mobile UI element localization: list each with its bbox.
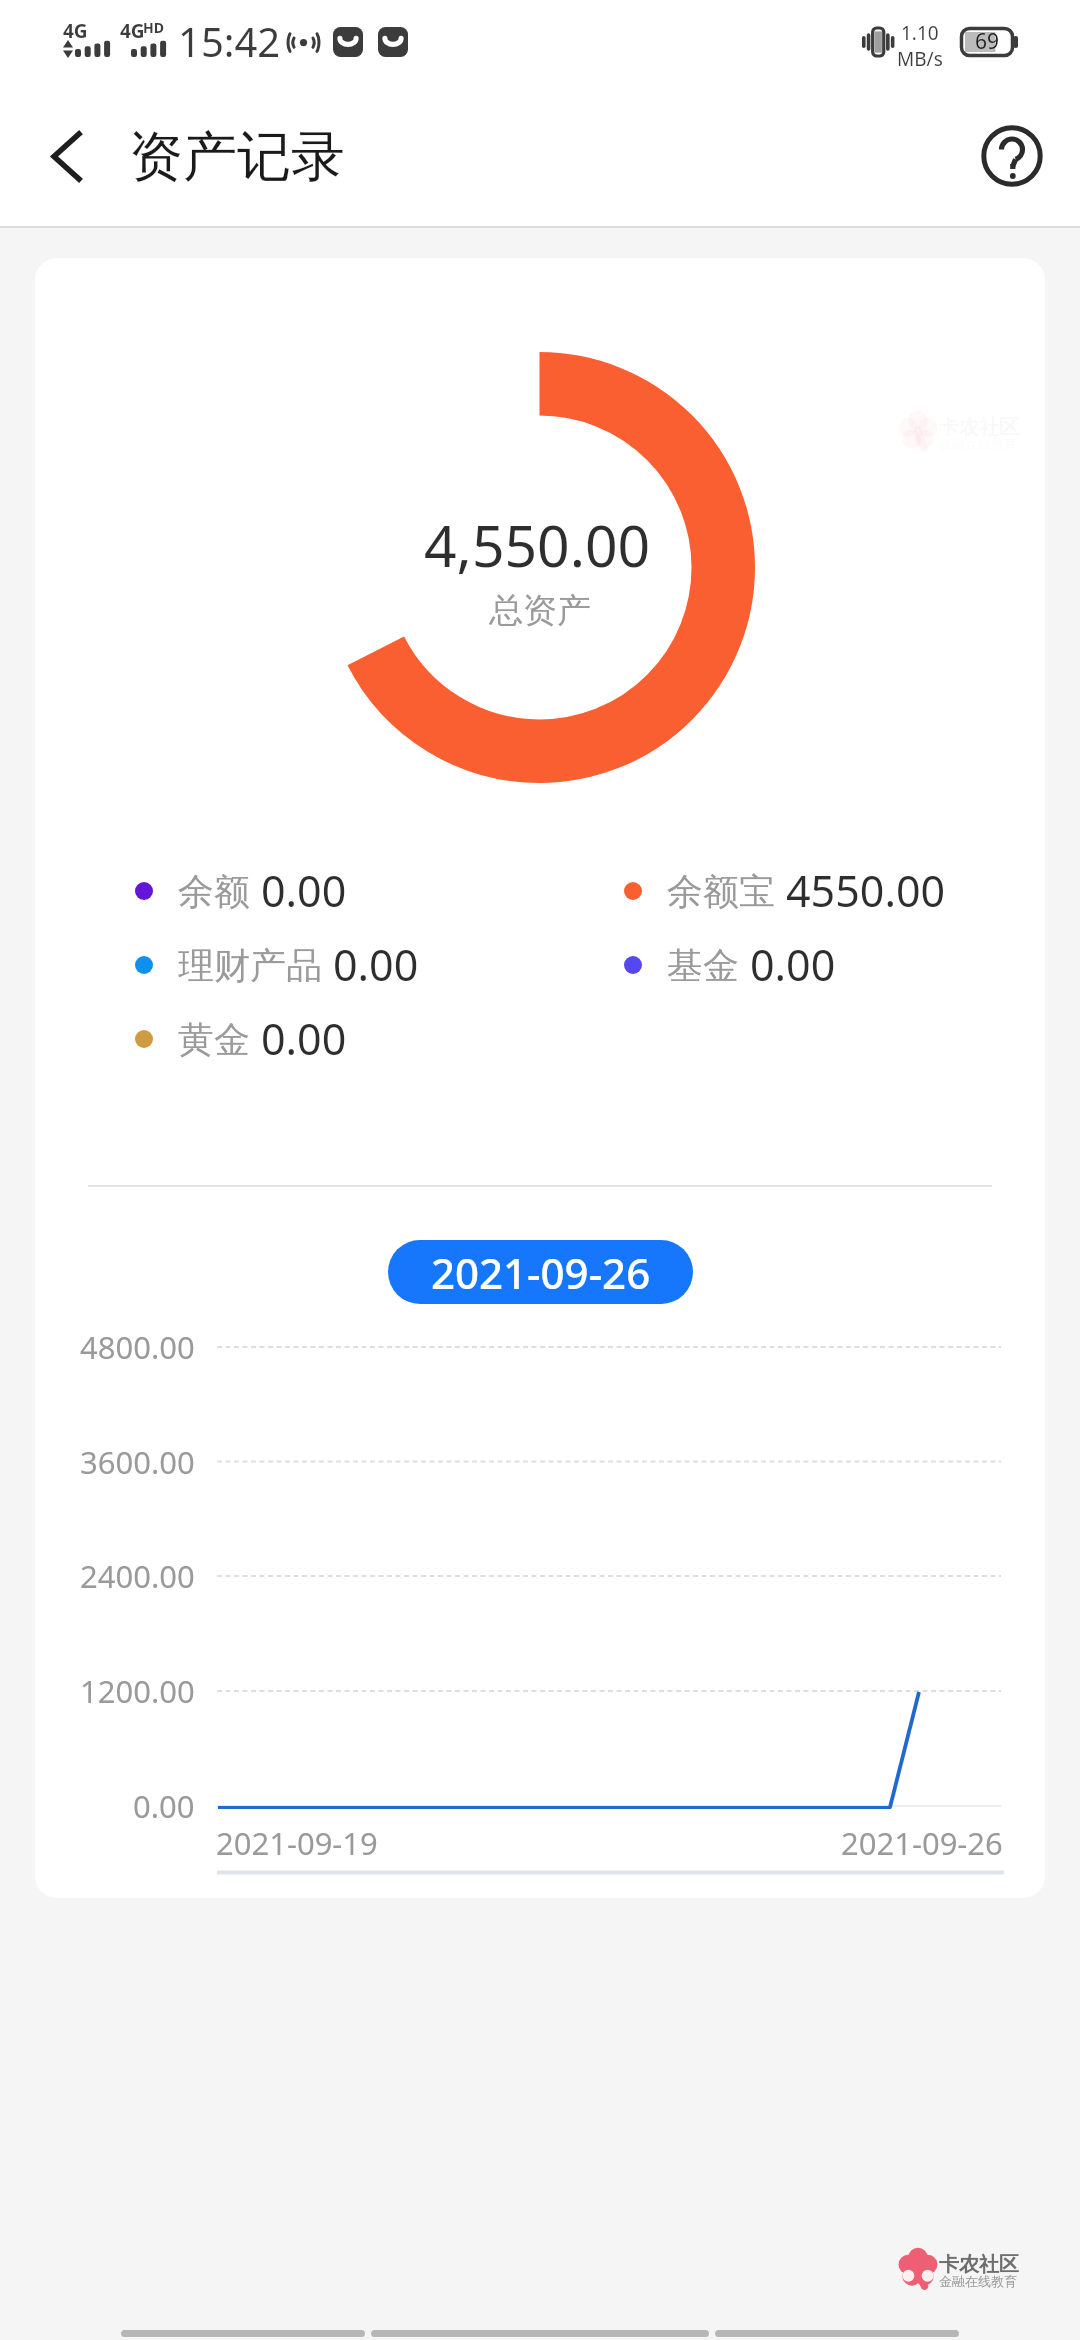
staticText: 0.00 xyxy=(261,861,347,920)
staticText: 69 xyxy=(975,27,1000,56)
button[interactable]: Navigation xyxy=(371,2330,709,2337)
staticText: 15:42 xyxy=(178,14,281,68)
staticText: 2400.00 xyxy=(80,1555,195,1597)
staticText: 1200.00 xyxy=(80,1670,195,1712)
button[interactable]: 2021-09-26 xyxy=(388,1240,693,1304)
staticText: 0.00 xyxy=(261,1009,347,1068)
staticText: 0.00 xyxy=(333,935,419,994)
staticText: 基金 xyxy=(667,943,739,988)
staticText: 4550.00 xyxy=(786,861,946,920)
staticText: 余额宝 xyxy=(667,869,775,914)
staticText: 理财产品 xyxy=(178,943,322,988)
staticText: 总资产 xyxy=(489,589,591,632)
staticText: 4G xyxy=(63,18,88,44)
staticText: 2021-09-26 xyxy=(431,1244,651,1301)
staticText: 黄金 xyxy=(178,1017,250,1062)
staticText: 卡农社区 xyxy=(939,2252,1019,2277)
staticText: 0.00 xyxy=(133,1785,195,1827)
staticText: 4G xyxy=(120,18,145,44)
staticText: 0.00 xyxy=(750,935,836,994)
staticText: 资产记录 xyxy=(129,123,345,191)
staticText: HD xyxy=(143,18,164,37)
staticText: 4,550.00 xyxy=(424,506,651,584)
button[interactable]: Navigation xyxy=(121,2330,365,2337)
staticText: MB/s xyxy=(897,46,943,72)
staticText: 1.10 xyxy=(901,20,939,46)
button[interactable]: Back xyxy=(28,122,102,196)
staticText: 4800.00 xyxy=(80,1326,195,1368)
staticText: 余额 xyxy=(178,869,250,914)
staticText: 2021-09-26 xyxy=(841,1822,1003,1864)
staticText: 金融在线教育 xyxy=(939,2273,1017,2289)
staticText: 2021-09-19 xyxy=(216,1822,378,1864)
button[interactable]: Navigation xyxy=(715,2330,959,2337)
button[interactable]: Help xyxy=(972,116,1052,196)
staticText: 3600.00 xyxy=(80,1441,195,1483)
